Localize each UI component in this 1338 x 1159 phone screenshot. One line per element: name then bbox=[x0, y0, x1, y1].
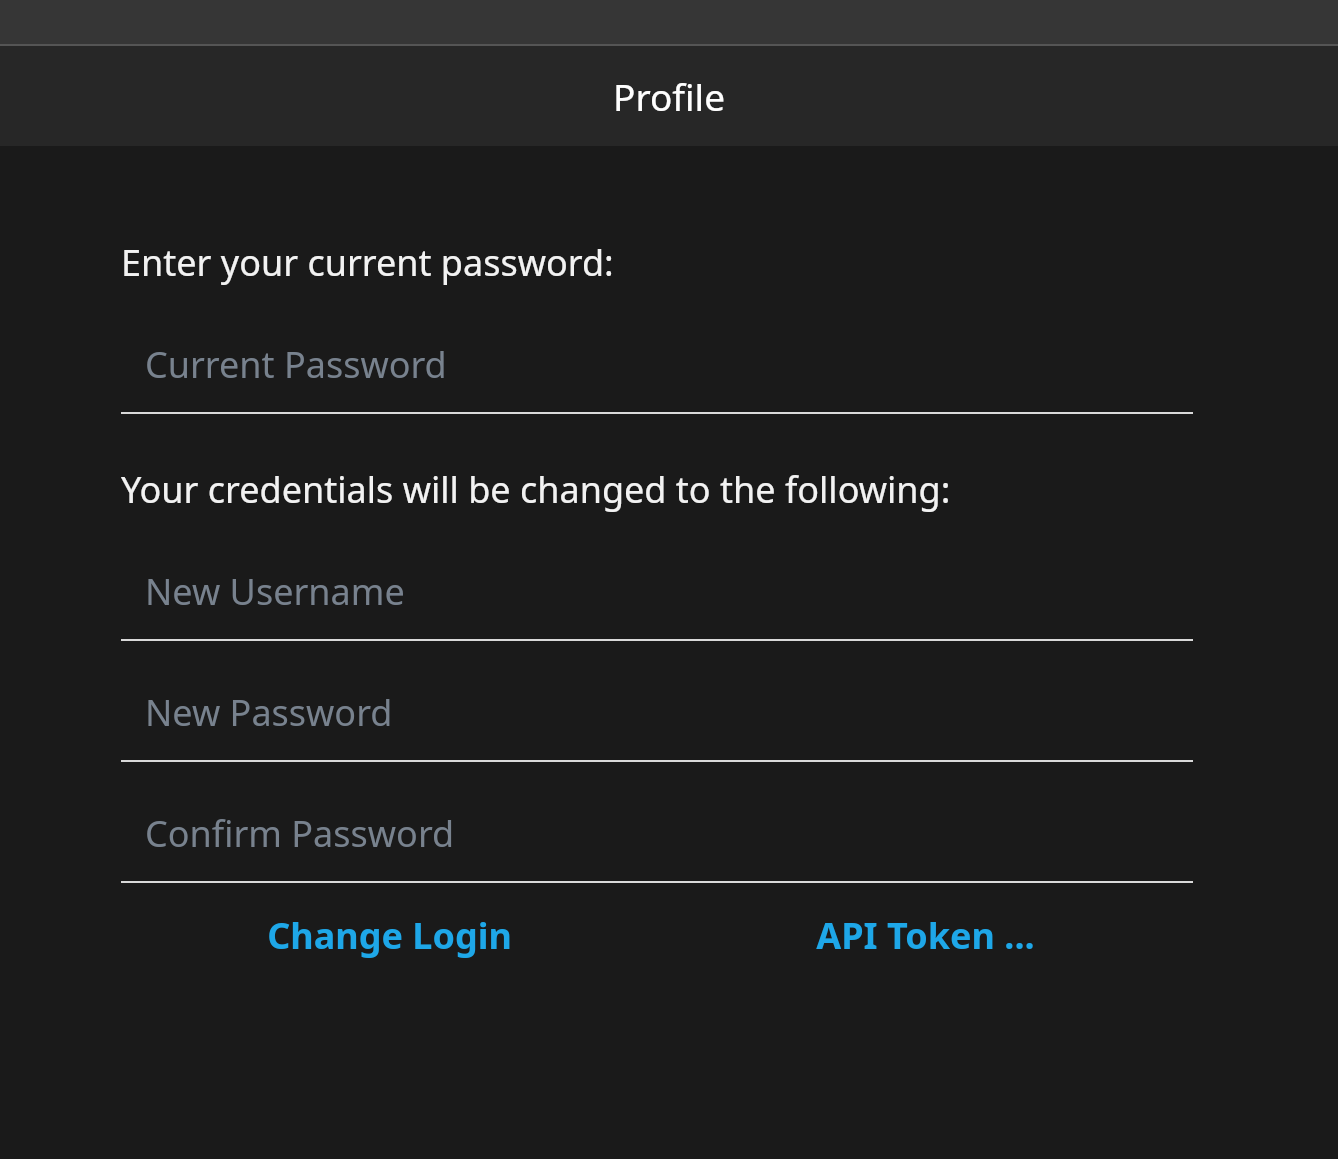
staticText: New Password bbox=[145, 688, 393, 737]
staticText: Change Login bbox=[267, 911, 512, 960]
staticText: New Username bbox=[145, 567, 405, 616]
staticText: Enter your current password: bbox=[121, 238, 1314, 287]
staticText: Your credentials will be changed to the … bbox=[121, 465, 1314, 514]
staticText: API Token ... bbox=[816, 911, 1035, 960]
staticText: Profile bbox=[613, 71, 725, 121]
button[interactable]: API Token ... bbox=[657, 905, 1193, 965]
staticText: Confirm Password bbox=[145, 809, 455, 858]
button[interactable]: Current Password bbox=[121, 334, 1193, 414]
button[interactable]: New Username bbox=[121, 561, 1193, 641]
button[interactable]: New Password bbox=[121, 682, 1193, 762]
staticText: Current Password bbox=[145, 340, 447, 389]
button[interactable]: Confirm Password bbox=[121, 803, 1193, 883]
button[interactable]: Change Login bbox=[121, 905, 657, 965]
